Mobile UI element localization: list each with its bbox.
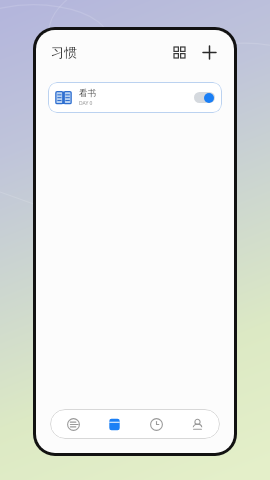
staticText: DAY 0 (79, 100, 93, 107)
staticText: 习惯 (51, 44, 77, 60)
button[interactable]: Timer (138, 409, 174, 439)
button[interactable]: Statistics (55, 409, 91, 439)
button[interactable]: Toggle habit (194, 92, 215, 103)
staticText: 看书 (79, 88, 96, 99)
button[interactable]: Profile (179, 409, 215, 439)
button[interactable]: 看书 (48, 82, 222, 113)
button[interactable]: Grid view (167, 40, 191, 64)
button[interactable]: Add habit (197, 40, 221, 64)
button[interactable]: Habits (96, 409, 132, 439)
